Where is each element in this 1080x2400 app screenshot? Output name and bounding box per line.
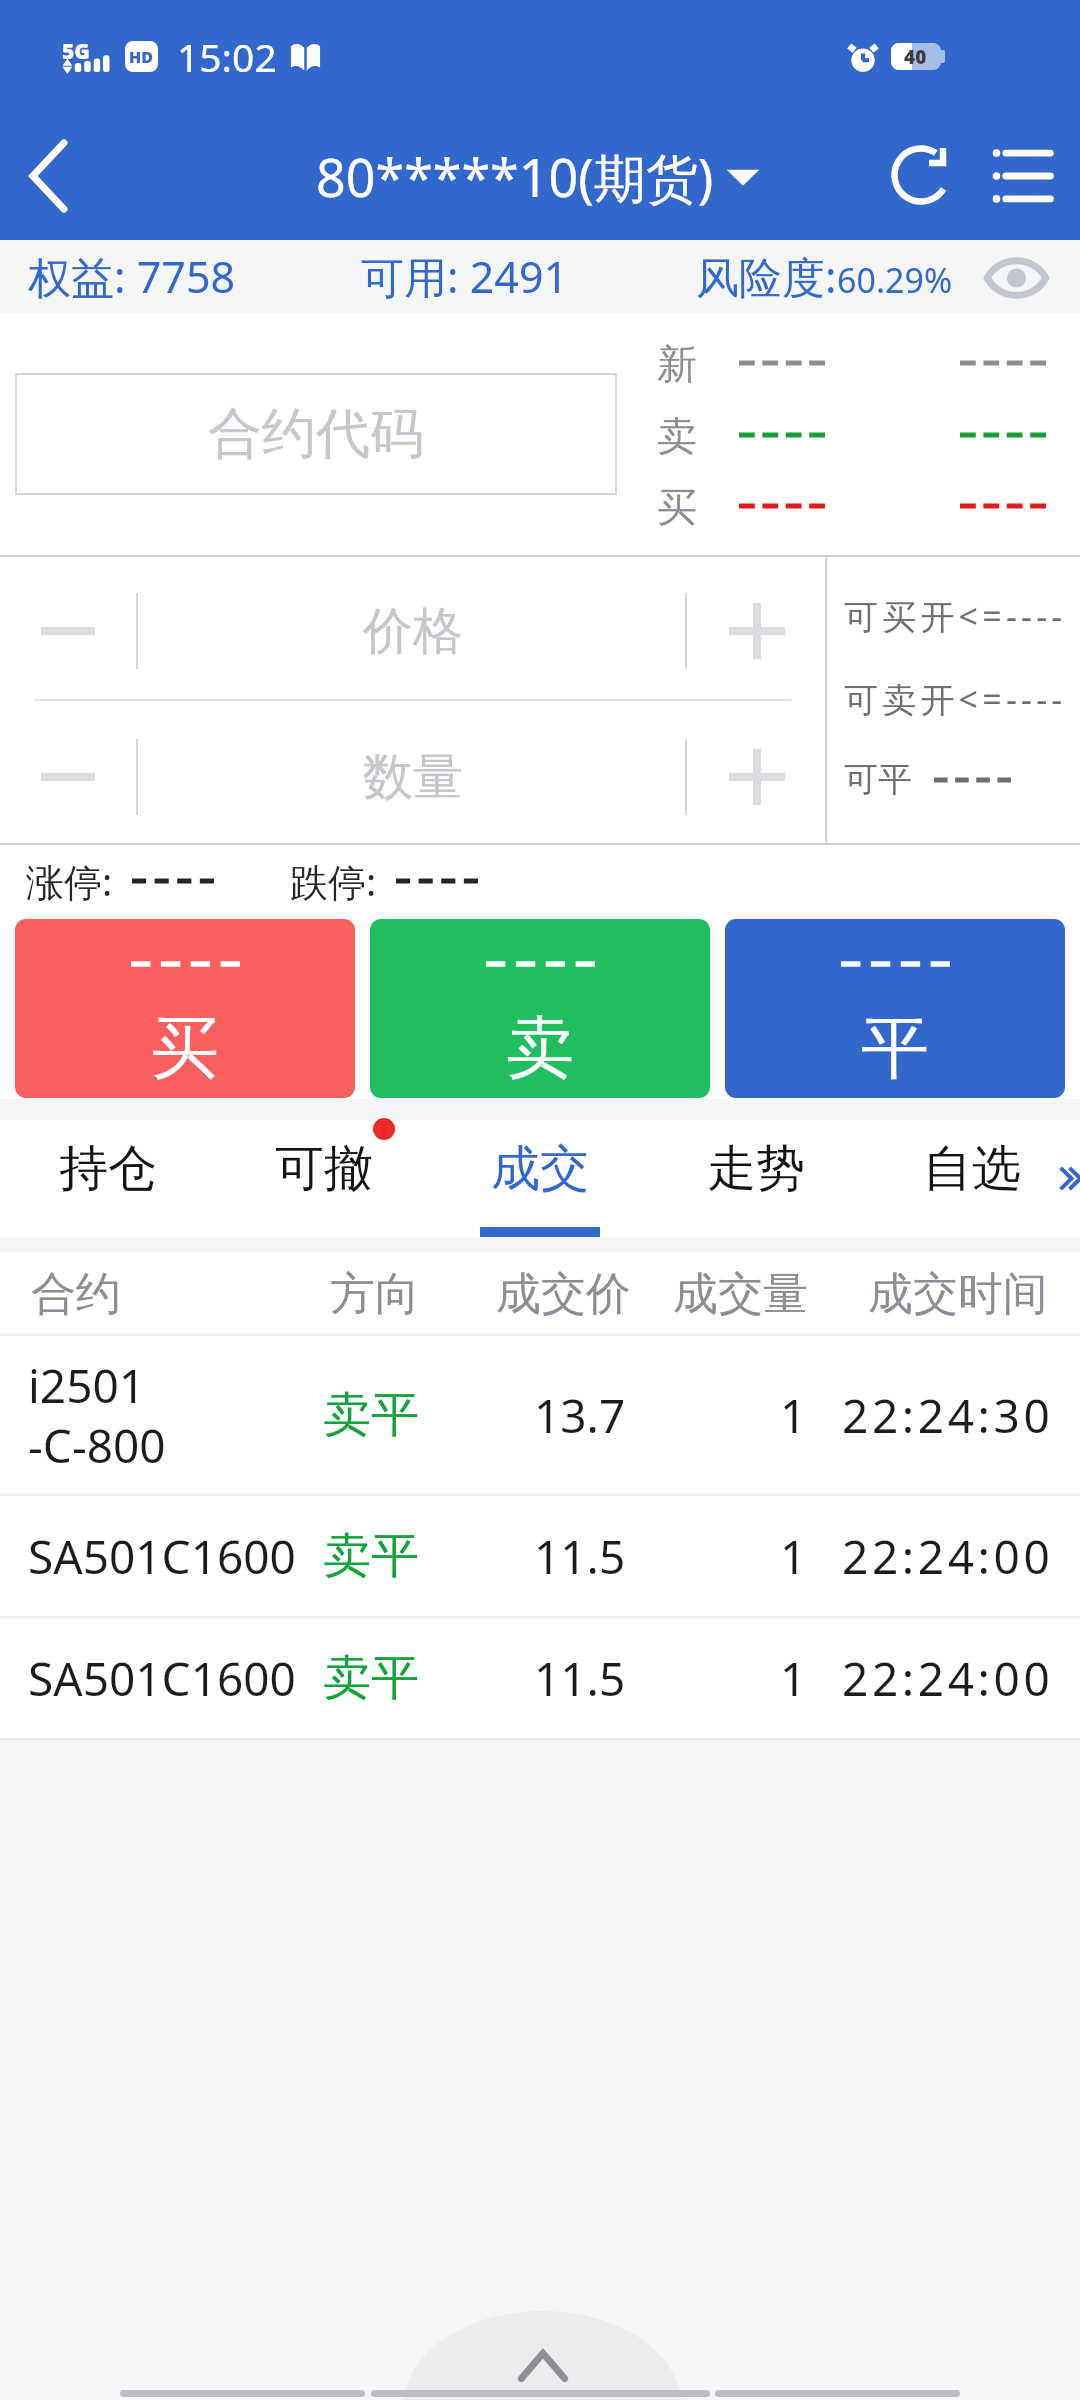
staticText: 11.5 <box>534 1647 626 1710</box>
staticText: 可卖开<=---- <box>844 676 1067 722</box>
staticText: 买 <box>151 1006 219 1092</box>
staticText: 风险度: <box>696 247 837 306</box>
staticText: HD <box>129 46 154 68</box>
staticText: 自选 <box>923 1138 1021 1200</box>
staticText: 22:24:00 <box>842 1525 1054 1588</box>
staticText: 成交价 <box>496 1266 631 1323</box>
staticText: 价格 <box>363 600 463 663</box>
button[interactable]: 卖 <box>370 919 710 1098</box>
button[interactable]: 买 <box>15 919 355 1098</box>
button[interactable]: Increase 数量 <box>690 701 825 845</box>
button[interactable]: 自选 <box>864 1120 1080 1237</box>
staticText: 5G <box>62 37 90 66</box>
staticText: 权益: 7758 <box>28 247 236 306</box>
button[interactable]: SA501C1600 <box>0 1618 1080 1738</box>
staticText: 成交 <box>491 1138 589 1200</box>
button[interactable]: More tabs <box>1036 1142 1080 1214</box>
button[interactable]: 80*****10(期货) <box>316 141 760 212</box>
staticText: 1 <box>780 1525 807 1588</box>
button[interactable]: Back <box>0 112 100 240</box>
staticText: 平 <box>861 1006 929 1092</box>
button[interactable]: 平 <box>725 919 1065 1098</box>
button[interactable]: Menu <box>983 112 1080 240</box>
button[interactable]: i2501 -C-800 <box>0 1336 1080 1494</box>
button[interactable]: 可撤 <box>216 1120 432 1237</box>
staticText: 成交量 <box>673 1266 808 1323</box>
button[interactable]: Refresh <box>862 112 982 240</box>
staticText: SA501C1600 <box>28 1647 296 1710</box>
staticText: 卖 <box>506 1006 574 1092</box>
button[interactable]: Decrease 价格 <box>0 555 136 699</box>
staticText: 数量 <box>363 746 463 809</box>
staticText: 合约代码 <box>208 400 424 468</box>
staticText: 新 <box>657 339 697 387</box>
staticText: 80*****10(期货) <box>316 141 714 212</box>
staticText: 卖平 <box>323 1385 419 1445</box>
staticText: 13.7 <box>534 1384 626 1447</box>
staticText: SA501C1600 <box>28 1525 296 1588</box>
staticText: 可用: 2491 <box>361 247 569 306</box>
button[interactable]: 持仓 <box>0 1120 216 1237</box>
staticText: 涨停: <box>26 855 113 907</box>
staticText: 可撤 <box>275 1138 373 1200</box>
staticText: 可买开<=---- <box>844 593 1067 639</box>
staticText: 跌停: <box>290 855 377 907</box>
button[interactable]: 走势 <box>648 1120 864 1237</box>
staticText: 22:24:00 <box>842 1647 1054 1710</box>
staticText: 15:02 <box>177 30 277 83</box>
staticText: 走势 <box>707 1138 805 1200</box>
staticText: 成交时间 <box>868 1266 1048 1323</box>
staticText: 40 <box>904 44 927 70</box>
button[interactable]: 成交 <box>432 1120 648 1237</box>
staticText: i2501 -C-800 <box>28 1354 166 1477</box>
staticText: 1 <box>780 1384 807 1447</box>
staticText: 卖平 <box>323 1526 419 1586</box>
staticText: 买 <box>657 482 697 530</box>
button[interactable]: Expand panel <box>404 2311 681 2400</box>
staticText: 22:24:30 <box>842 1384 1054 1447</box>
staticText: 1 <box>780 1647 807 1710</box>
button[interactable]: 价格 <box>206 559 619 703</box>
staticText: 可平 <box>844 758 912 801</box>
staticText: 方向 <box>330 1266 420 1323</box>
staticText: 60.29% <box>837 257 953 303</box>
button[interactable]: Decrease 数量 <box>0 701 136 845</box>
staticText: 持仓 <box>59 1138 157 1200</box>
staticText: 卖平 <box>323 1648 419 1708</box>
button[interactable]: Toggle balance visibility <box>975 240 1056 313</box>
button[interactable]: Increase 价格 <box>690 555 825 699</box>
staticText: 卖 <box>657 411 697 459</box>
staticText: 11.5 <box>534 1525 626 1588</box>
button[interactable]: 合约代码 <box>15 373 617 495</box>
button[interactable]: 数量 <box>206 705 619 849</box>
staticText: 合约 <box>31 1266 121 1323</box>
button[interactable]: SA501C1600 <box>0 1496 1080 1616</box>
